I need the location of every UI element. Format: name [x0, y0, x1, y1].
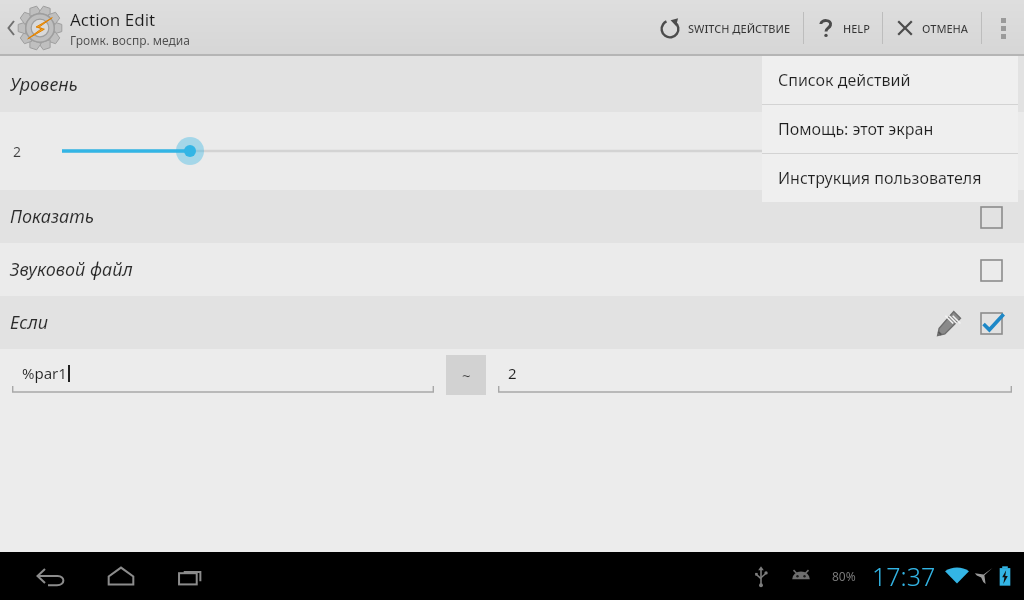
staticText: Список действий — [778, 69, 911, 91]
staticText: Если — [10, 310, 49, 335]
button[interactable]: 2 — [0, 112, 1024, 190]
button[interactable]: Инструкция пользователя — [762, 154, 1018, 202]
staticText: Инструкция пользователя — [778, 167, 982, 189]
staticText: SWITCH ДЕЙСТВИЕ — [688, 21, 791, 36]
button[interactable]: Unchecked — [976, 255, 1006, 285]
button[interactable]: HELP — [804, 0, 882, 56]
button[interactable]: SWITCH ДЕЙСТВИЕ — [647, 0, 803, 56]
button[interactable]: Edit — [932, 307, 964, 339]
button[interactable]: ОТМЕНА — [883, 0, 981, 56]
button[interactable]: More options — [982, 0, 1024, 56]
button[interactable]: Помощь: этот экран — [762, 105, 1018, 153]
staticText: Звуковой файл — [10, 257, 133, 282]
staticText: Показать — [10, 204, 94, 229]
button[interactable]: Уровень — [0, 56, 1024, 112]
staticText: HELP — [843, 21, 870, 36]
button[interactable]: Unchecked — [976, 202, 1006, 232]
staticText: %par1 — [22, 363, 67, 383]
button[interactable]: %par1 — [12, 356, 434, 394]
button[interactable]: Checked — [976, 308, 1006, 338]
staticText: 80% — [832, 568, 856, 584]
staticText: ~ — [462, 365, 471, 385]
button[interactable]: ~ — [446, 355, 486, 395]
staticText: ОТМЕНА — [922, 21, 969, 36]
button[interactable]: Список действий — [762, 56, 1018, 104]
staticText: Action Edit — [70, 8, 156, 31]
button[interactable]: Home — [86, 552, 156, 600]
staticText: 2 — [13, 142, 22, 161]
staticText: Помощь: этот экран — [778, 118, 934, 140]
staticText: 17:37 — [872, 559, 936, 593]
staticText: 2 — [508, 363, 517, 383]
button[interactable]: Recent apps — [156, 552, 226, 600]
button[interactable]: Если — [0, 296, 1024, 349]
button[interactable]: Показать — [0, 190, 1024, 243]
button[interactable]: 2 — [498, 356, 1012, 394]
button[interactable]: Back — [16, 552, 86, 600]
staticText: Уровень — [10, 72, 78, 97]
staticText: Громк. воспр. медиа — [70, 32, 190, 48]
button[interactable]: Звуковой файл — [0, 243, 1024, 296]
